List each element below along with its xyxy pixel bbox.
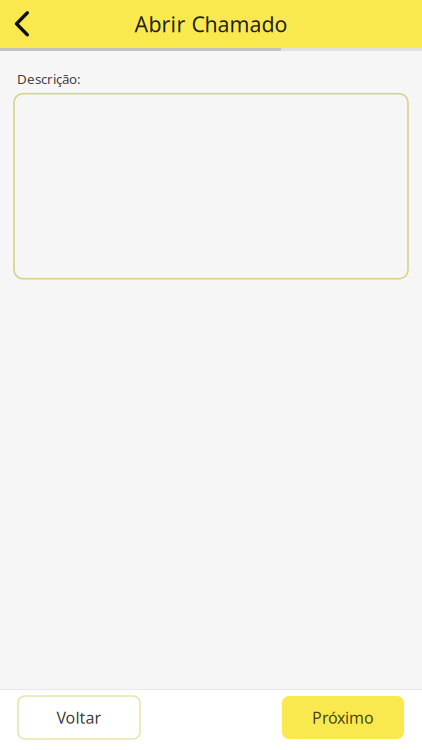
staticText: Descrição: <box>17 70 81 88</box>
button[interactable]: Descrição <box>0 94 422 279</box>
staticText: Próximo <box>312 707 374 728</box>
staticText: Voltar <box>56 707 101 728</box>
button[interactable]: Back <box>0 0 44 48</box>
button[interactable]: Próximo <box>282 696 404 739</box>
button[interactable]: Voltar <box>18 696 140 739</box>
staticText: Abrir Chamado <box>134 10 287 38</box>
